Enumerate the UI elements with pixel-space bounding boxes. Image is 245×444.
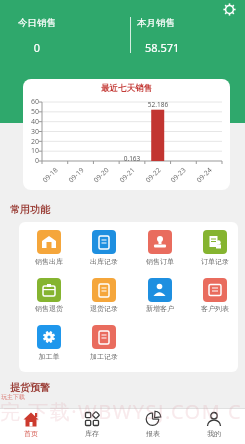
staticText: 09-24 bbox=[195, 165, 214, 184]
staticText: 0 bbox=[22, 40, 52, 55]
staticText: 最近七天销售 bbox=[23, 83, 230, 94]
staticText: 09-23 bbox=[169, 165, 188, 184]
staticText: 60 bbox=[23, 97, 39, 107]
button[interactable] bbox=[92, 278, 116, 302]
button[interactable]: 首页 bbox=[11, 408, 51, 444]
staticText: 新增客户 bbox=[138, 304, 182, 313]
staticText: 常用功能 bbox=[10, 203, 50, 216]
staticText: 0.163 bbox=[112, 154, 152, 163]
button[interactable] bbox=[92, 325, 116, 349]
staticText: 20 bbox=[23, 137, 39, 147]
staticText: 提货预警 bbox=[10, 381, 50, 394]
button[interactable] bbox=[222, 2, 237, 17]
button[interactable]: 库存 bbox=[72, 408, 112, 444]
staticText: 09-20 bbox=[92, 165, 111, 184]
button[interactable] bbox=[92, 230, 116, 254]
staticText: 出库记录 bbox=[82, 257, 126, 266]
staticText: 销售退货 bbox=[27, 304, 71, 313]
staticText: 玩主下载 bbox=[1, 393, 25, 401]
button[interactable] bbox=[0, 10, 130, 62]
staticText: 加工单 bbox=[27, 352, 71, 361]
staticText: 09-21 bbox=[118, 165, 137, 184]
staticText: 客户列表 bbox=[193, 304, 237, 313]
staticText: 销售订单 bbox=[138, 257, 182, 266]
button[interactable] bbox=[37, 325, 61, 349]
staticText: 销售出库 bbox=[27, 257, 71, 266]
staticText: 首页 bbox=[11, 429, 51, 438]
button[interactable] bbox=[37, 230, 61, 254]
button[interactable] bbox=[203, 278, 227, 302]
staticText: 报表 bbox=[133, 429, 173, 438]
staticText: 本月销售 bbox=[137, 17, 175, 29]
staticText: 订单记录 bbox=[193, 257, 237, 266]
button[interactable] bbox=[203, 230, 227, 254]
staticText: 完 下载·WBWYSJ.COM C bbox=[0, 398, 243, 425]
staticText: 40 bbox=[23, 117, 39, 127]
staticText: 库存 bbox=[72, 429, 112, 438]
button[interactable] bbox=[37, 278, 61, 302]
staticText: 今日销售 bbox=[18, 17, 56, 29]
staticText: 10 bbox=[23, 146, 39, 156]
staticText: 58.571 bbox=[145, 40, 180, 55]
button[interactable] bbox=[148, 230, 172, 254]
staticText: 50 bbox=[23, 107, 39, 117]
staticText: 我的 bbox=[194, 429, 234, 438]
staticText: 30 bbox=[23, 127, 39, 137]
staticText: 0 bbox=[23, 156, 39, 166]
button[interactable]: 报表 bbox=[133, 408, 173, 444]
staticText: 52.186 bbox=[138, 100, 178, 109]
staticText: 09-18 bbox=[41, 165, 60, 184]
button[interactable]: 我的 bbox=[194, 408, 234, 444]
staticText: 加工记录 bbox=[82, 352, 126, 361]
staticText: 09-22 bbox=[144, 165, 163, 184]
button[interactable] bbox=[148, 278, 172, 302]
staticText: 09-19 bbox=[67, 165, 86, 184]
staticText: 退货记录 bbox=[82, 304, 126, 313]
